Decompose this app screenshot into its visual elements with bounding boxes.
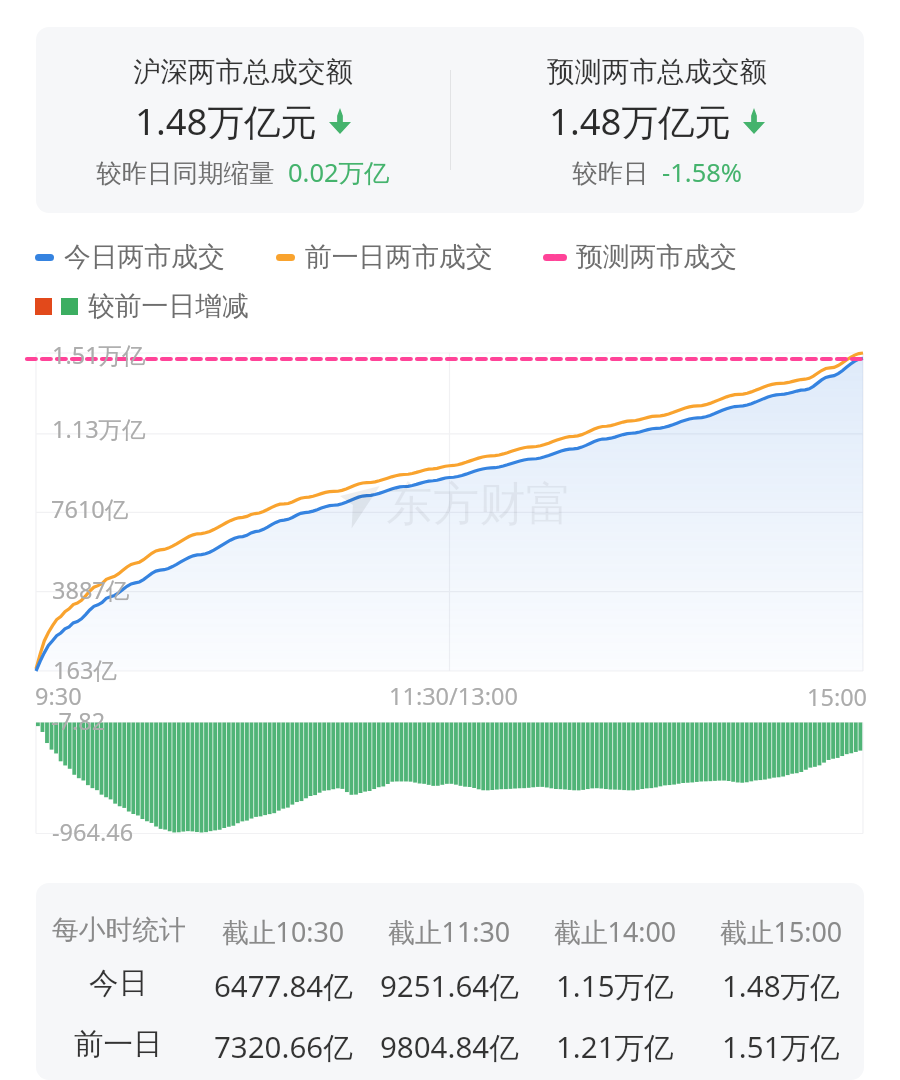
staticText: 截止15:00 <box>720 913 843 950</box>
staticText: 9804.84亿 <box>380 1026 519 1066</box>
button[interactable]: 前一日两市成交 <box>276 240 493 274</box>
button[interactable]: 今日两市成交 <box>35 240 225 274</box>
staticText: 前一日两市成交 <box>305 240 493 274</box>
staticText: 9:30 <box>35 680 82 712</box>
staticText: 每小时统计 <box>52 913 186 947</box>
staticText: 15:00 <box>807 681 868 713</box>
staticText: 1.48万亿 <box>722 965 840 1005</box>
staticText: 今日两市成交 <box>64 240 225 274</box>
staticText: 7610亿 <box>51 493 129 525</box>
button[interactable]: 预测两市成交 <box>543 240 737 274</box>
staticText: 1.51万亿 <box>52 339 146 371</box>
staticText: 6477.84亿 <box>214 965 353 1005</box>
staticText: 3887亿 <box>52 574 130 606</box>
staticText: 1.21万亿 <box>556 1026 674 1066</box>
staticText: 1.15万亿 <box>556 965 674 1005</box>
staticText: 7320.66亿 <box>214 1026 353 1066</box>
button[interactable]: 每小时统计 <box>36 883 864 1080</box>
staticText: 预测两市成交 <box>576 240 737 274</box>
staticText: 较前一日增减 <box>88 289 249 323</box>
staticText: 1.51万亿 <box>722 1026 840 1066</box>
staticText: 沪深两市总成交额 <box>133 55 353 90</box>
staticText: 前一日 <box>74 1026 163 1063</box>
staticText: 11:30/13:00 <box>389 680 518 712</box>
staticText: 截止10:30 <box>222 913 345 950</box>
staticText: -964.46 <box>52 816 134 848</box>
staticText: 截止14:00 <box>554 913 677 950</box>
staticText: 较昨日同期缩量 <box>96 157 275 189</box>
staticText: 预测两市总成交额 <box>547 55 767 90</box>
staticText: 东方财富 <box>386 475 572 534</box>
staticText: 1.48万亿元 <box>135 96 317 146</box>
staticText: 163亿 <box>53 654 117 686</box>
staticText: 今日 <box>89 965 148 1002</box>
staticText: 截止11:30 <box>388 913 511 950</box>
staticText: 较昨日 <box>572 157 649 189</box>
button[interactable]: 沪深两市总成交额 <box>36 27 864 213</box>
staticText: 1.13万亿 <box>52 413 146 445</box>
staticText: -7.82 <box>51 705 106 737</box>
staticText: 1.48万亿元 <box>549 96 731 146</box>
staticText: -1.58% <box>662 155 742 190</box>
staticText: 0.02万亿 <box>288 155 390 190</box>
staticText: 9251.64亿 <box>380 965 519 1005</box>
